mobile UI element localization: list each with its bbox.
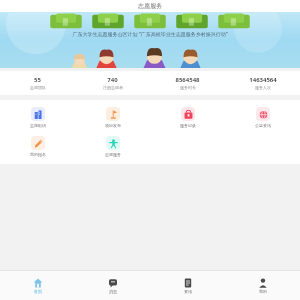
button[interactable]: 志愿服务 bbox=[75, 134, 150, 159]
staticText: 志愿团队 bbox=[30, 85, 46, 90]
button[interactable]: 55 bbox=[0, 71, 75, 95]
staticText: 志愿服务 bbox=[105, 152, 121, 157]
staticText: 740 bbox=[107, 76, 118, 84]
button[interactable]: 我的报名 bbox=[0, 134, 75, 159]
button[interactable]: 公益资讯 bbox=[225, 105, 300, 130]
button[interactable]: 我的 bbox=[225, 271, 300, 300]
staticText: 消息 bbox=[109, 289, 117, 294]
staticText: 服务记录 bbox=[180, 123, 196, 128]
button[interactable]: 消息 bbox=[75, 271, 150, 300]
staticText: 我的 bbox=[259, 289, 267, 294]
button[interactable]: 8564548 bbox=[150, 71, 225, 95]
staticText: 55 bbox=[34, 76, 41, 84]
staticText: 项目发布 bbox=[105, 123, 121, 128]
staticText: 公益资讯 bbox=[255, 123, 271, 128]
button[interactable]: 740 bbox=[75, 71, 150, 95]
button[interactable]: 14634564 bbox=[225, 71, 300, 95]
staticText: 广东大学生志愿服务山区计划 “广东高校毕业生志愿服务乡村振兴行动” bbox=[6, 31, 294, 38]
staticText: 8564548 bbox=[175, 76, 200, 84]
staticText: 14634564 bbox=[249, 76, 277, 84]
staticText: 志愿组织 bbox=[30, 123, 46, 128]
button[interactable]: 资讯 bbox=[150, 271, 225, 300]
staticText: 首页 bbox=[34, 289, 42, 294]
staticText: 服务人次 bbox=[255, 85, 271, 90]
button[interactable]: 志愿组织 bbox=[0, 105, 75, 130]
staticText: 我的报名 bbox=[30, 152, 46, 157]
staticText: 资讯 bbox=[184, 289, 192, 294]
staticText: 服务时长 bbox=[180, 85, 196, 90]
staticText: 注册志愿者 bbox=[103, 85, 123, 90]
button[interactable]: 首页 bbox=[0, 271, 75, 300]
staticText: 志愿服务 bbox=[138, 2, 162, 10]
button[interactable]: 服务记录 bbox=[150, 105, 225, 130]
button[interactable]: 项目发布 bbox=[75, 105, 150, 130]
